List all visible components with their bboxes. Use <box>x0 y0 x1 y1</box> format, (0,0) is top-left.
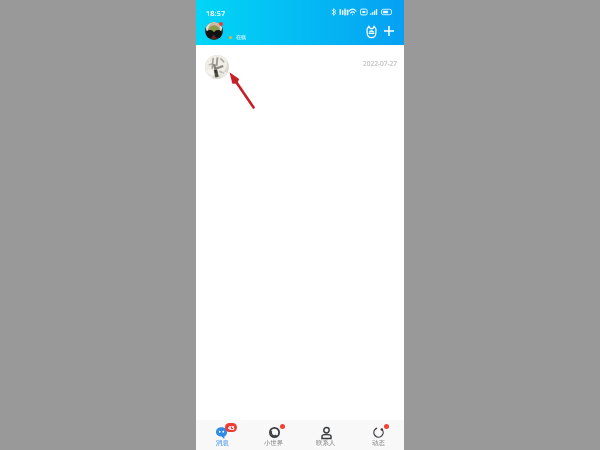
button[interactable]: 添加 <box>380 22 398 40</box>
staticText: 2022-07-27 <box>363 59 397 68</box>
button[interactable]: 43 <box>196 410 248 450</box>
staticText: 消息 <box>216 439 229 447</box>
staticText: 43 <box>228 424 235 431</box>
staticText: 动态 <box>372 439 385 447</box>
button[interactable]: 小世界 <box>362 22 380 40</box>
button[interactable]: 动态 <box>352 410 404 450</box>
button[interactable]: 小世界 <box>248 410 300 450</box>
button[interactable]: 2022-07-27 <box>196 47 404 87</box>
button[interactable]: 联系人 <box>300 410 352 450</box>
button[interactable]: 头像 <box>205 22 223 40</box>
staticText: 在线 <box>236 34 246 40</box>
button[interactable]: 在线 <box>229 34 246 40</box>
staticText: 联系人 <box>316 439 336 447</box>
staticText: 18:57 <box>206 8 226 18</box>
staticText: 小世界 <box>264 439 284 447</box>
